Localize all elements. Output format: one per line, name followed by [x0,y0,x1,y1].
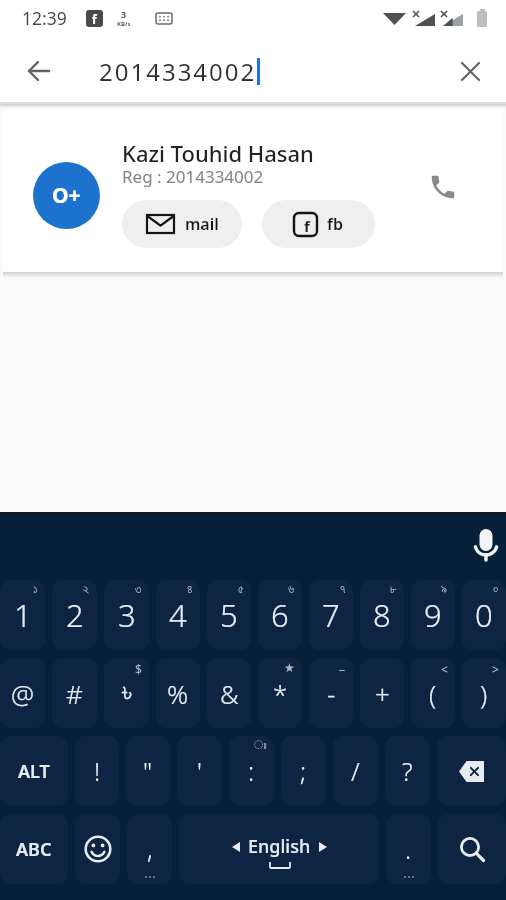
button[interactable] [75,814,120,884]
staticText: 9 [424,594,442,636]
staticText: mail [185,213,219,235]
button[interactable]: - [309,658,353,728]
staticText: # [66,676,83,711]
staticText: 6 [271,594,289,636]
staticText: - [327,676,336,711]
staticText: ; [300,754,307,788]
button[interactable]: 6 [258,580,302,650]
button[interactable]: 3 [104,580,149,650]
staticText: 4 [169,594,187,636]
staticText: ৮ [390,583,397,595]
staticText: – [339,661,346,677]
staticText: 3 [118,594,136,636]
button[interactable]: 9 [411,580,455,650]
staticText: ২ [83,583,90,595]
staticText: & [220,676,239,711]
button[interactable]: ! [75,736,119,806]
staticText: $ [135,661,142,677]
button[interactable] [438,814,506,884]
staticText: , [147,832,153,866]
button[interactable]: 5 [207,580,251,650]
staticText: @ [11,676,35,711]
staticText: 2 [66,594,84,636]
button[interactable]: + [360,658,404,728]
staticText: ৳ [122,680,132,706]
staticText: KB/s [117,20,131,28]
button[interactable]: English [179,814,379,884]
staticText: ৩ [135,583,142,595]
button[interactable] [450,51,490,91]
button[interactable]: mail [122,200,242,248]
staticText: ? [402,754,413,788]
staticText: ALT [18,759,50,784]
button[interactable]: ( [411,658,455,728]
staticText: + [375,676,390,711]
staticText: 12:39 [22,6,67,30]
staticText: 0 [475,594,493,636]
staticText: English [248,834,311,859]
staticText: 5 [220,594,238,636]
staticText: ( [429,676,437,711]
staticText: * [273,676,288,711]
staticText: 3 [121,8,127,20]
button[interactable]: 1 [0,580,45,650]
staticText: . [405,832,412,866]
button[interactable]: 7 [309,580,353,650]
staticText: % [167,676,189,711]
staticText: ঃ [254,739,267,751]
button[interactable]: ) [462,658,506,728]
staticText: 7 [322,594,340,636]
staticText: " [143,754,153,788]
button[interactable] [466,525,506,565]
button[interactable]: " [126,736,170,806]
staticText: 1 [14,594,32,636]
staticText: ★ [284,661,295,675]
button[interactable]: , [127,814,172,884]
staticText: ০ [493,583,499,595]
button[interactable]: ' [177,736,222,806]
button[interactable]: ABC [0,814,68,884]
button[interactable]: 8 [360,580,404,650]
button[interactable]: % [156,658,200,728]
staticText: ) [480,676,488,711]
staticText: ABC [16,837,52,862]
button[interactable]: @ [0,658,45,728]
button[interactable]: . [386,814,431,884]
staticText: 8 [373,594,391,636]
button[interactable]: 4 [156,580,200,650]
button[interactable] [423,167,463,207]
staticText: 2014334002 [99,55,257,88]
button[interactable]: ALT [0,736,68,806]
staticText: / [351,754,360,788]
button[interactable]: / [333,736,378,806]
staticText: < [441,661,448,677]
button[interactable]: ; [281,736,326,806]
staticText: ৫ [238,583,244,595]
button[interactable]: # [52,658,97,728]
button[interactable] [437,736,506,806]
button[interactable]: 0 [462,580,506,650]
staticText: ৯ [441,583,448,595]
staticText: ১ [33,583,38,595]
staticText: f [92,11,97,27]
button[interactable]: f [262,200,375,248]
button[interactable]: O+ [3,110,503,272]
staticText: ৭ [340,583,346,595]
staticText: fb [327,213,343,235]
staticText: : [248,754,255,788]
button[interactable] [18,50,60,92]
staticText: ' [197,754,202,788]
staticText: ৪ [187,583,193,595]
button[interactable]: ৳ [104,658,149,728]
button[interactable]: 2 [52,580,97,650]
button[interactable]: ? [385,736,430,806]
staticText: ! [94,754,101,788]
button[interactable]: : [229,736,274,806]
staticText: > [492,661,499,677]
staticText: Kazi Touhid Hasan [122,138,314,168]
staticText: Reg : 2014334002 [122,165,264,188]
button[interactable]: & [207,658,251,728]
button[interactable]: * [258,658,302,728]
staticText: f [304,216,310,236]
staticText: ৬ [288,583,295,595]
